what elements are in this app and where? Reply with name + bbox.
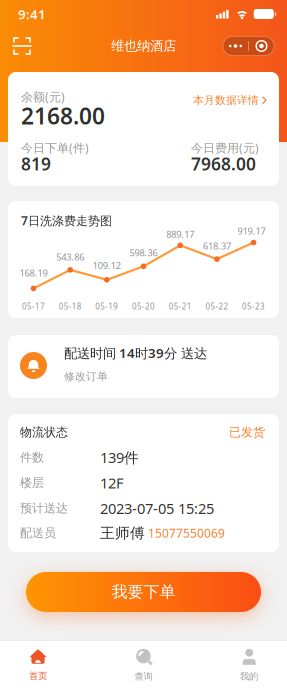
staticText: 预计送达 [20,501,68,516]
staticText: 我要下单 [111,582,175,602]
staticText: 2168.00 [21,101,105,131]
button[interactable]: 我要下单 [26,572,261,612]
staticText: 919.17 [238,225,266,237]
staticText: 件数 [20,450,44,465]
staticText: 修改订单 [64,370,108,383]
button[interactable]: 首页 [28,648,47,682]
staticText: 查询 [134,671,152,682]
staticText: 本月数据详情 [193,94,259,107]
staticText: 2023-07-05 15:25 [100,499,214,518]
staticText: 配送时间 14时39分 送达 [64,344,207,362]
button[interactable]: 配送时间 14时39分 送达 [8,335,279,398]
staticText: 139件 [100,448,139,467]
staticText: 12F [100,473,124,493]
staticText: 我的 [240,671,258,682]
staticText: 05-19 [95,301,118,312]
staticText: 今日费用(元) [191,140,259,156]
button[interactable] [223,36,274,55]
staticText: 余额(元) [21,89,65,105]
staticText: 7968.00 [191,152,256,175]
staticText: 05-22 [205,301,228,312]
staticText: 05-23 [242,301,265,312]
staticText: 7日洗涤费走势图 [21,213,112,228]
staticText: 9:41 [18,5,46,23]
button[interactable]: 15077550069 [145,525,225,541]
staticText: 05-17 [22,301,45,312]
staticText: 首页 [29,670,47,682]
staticText: 今日下单(件) [21,140,89,156]
staticText: 109.12 [93,259,121,271]
button[interactable]: 本月数据详情 [193,94,267,107]
button[interactable]: 查询 [134,648,153,682]
button[interactable]: 我的 [239,648,258,682]
staticText: 05-18 [59,301,82,312]
staticText: 543.86 [56,251,84,263]
staticText: 15077550069 [148,525,225,541]
staticText: 05-21 [169,301,192,312]
staticText: 配送员 [20,526,56,540]
staticText: 598.36 [129,246,157,259]
staticText: 楼层 [20,475,44,490]
staticText: 物流状态 [20,425,68,440]
staticText: 维也纳酒店 [111,38,176,54]
button[interactable] [0,38,30,54]
staticText: 889.17 [166,228,194,240]
staticText: 618.37 [203,240,231,252]
staticText: 王师傅 [100,524,145,542]
staticText: 05-20 [132,301,155,312]
staticText: 已发货 [229,425,265,440]
staticText: 819 [21,152,51,175]
staticText: 168.19 [19,267,47,279]
